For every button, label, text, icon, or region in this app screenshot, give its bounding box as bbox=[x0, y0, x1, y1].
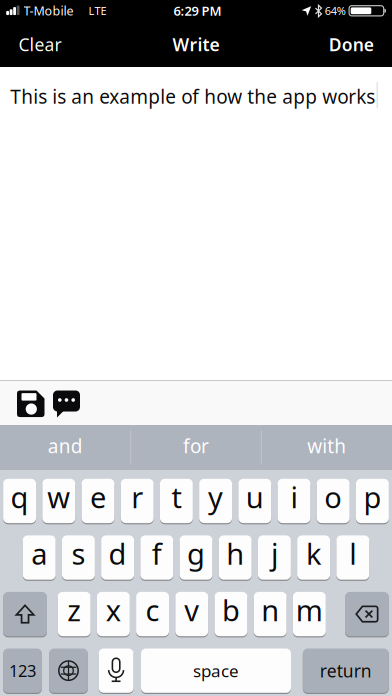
button[interactable]: 123 bbox=[3, 648, 42, 693]
staticText: d bbox=[109, 534, 127, 573]
staticText: h bbox=[226, 534, 244, 573]
button[interactable]: u bbox=[238, 479, 271, 523]
button[interactable]: w bbox=[42, 479, 75, 523]
button[interactable]: x bbox=[97, 592, 130, 636]
staticText: v bbox=[184, 590, 199, 630]
staticText: s bbox=[71, 534, 85, 573]
staticText: f bbox=[152, 534, 162, 573]
staticText: 6:29 PM bbox=[173, 2, 221, 19]
staticText: p bbox=[363, 477, 381, 517]
staticText: b bbox=[222, 590, 240, 630]
button[interactable]: and bbox=[0, 0, 392, 696]
button[interactable] bbox=[53, 390, 80, 417]
button[interactable]: g bbox=[180, 535, 212, 580]
button[interactable] bbox=[3, 592, 47, 636]
button[interactable]: h bbox=[219, 535, 252, 580]
button[interactable] bbox=[17, 391, 44, 417]
button[interactable]: Done bbox=[0, 0, 392, 696]
button[interactable]: m bbox=[293, 592, 326, 636]
staticText: t bbox=[171, 477, 181, 517]
staticText: k bbox=[306, 534, 321, 573]
button[interactable]: space bbox=[141, 648, 291, 693]
button[interactable]: t bbox=[160, 479, 193, 523]
button[interactable]: r bbox=[121, 479, 154, 523]
staticText: r bbox=[131, 477, 143, 517]
staticText: l bbox=[349, 534, 356, 573]
button[interactable]: q bbox=[3, 479, 36, 523]
staticText: g bbox=[187, 534, 205, 573]
staticText: o bbox=[324, 477, 342, 517]
staticText: c bbox=[146, 590, 160, 630]
button[interactable]: for bbox=[0, 0, 392, 696]
button[interactable] bbox=[99, 648, 133, 693]
button[interactable] bbox=[49, 648, 88, 693]
staticText: 123 bbox=[9, 659, 36, 682]
button[interactable]: with bbox=[0, 0, 392, 696]
button[interactable]: d bbox=[101, 535, 134, 580]
staticText: m bbox=[296, 590, 323, 630]
staticText: e bbox=[90, 477, 106, 517]
staticText: y bbox=[208, 477, 223, 517]
staticText: Write bbox=[172, 33, 219, 56]
button[interactable] bbox=[345, 592, 389, 636]
staticText: Done bbox=[329, 33, 374, 56]
button[interactable]: p bbox=[356, 479, 389, 523]
button[interactable]: s bbox=[62, 535, 95, 580]
button[interactable]: z bbox=[58, 592, 91, 636]
staticText: i bbox=[290, 477, 297, 517]
staticText: u bbox=[246, 477, 264, 517]
button[interactable]: Clear bbox=[0, 0, 392, 696]
button[interactable]: b bbox=[214, 592, 247, 636]
staticText: 64% bbox=[325, 3, 346, 18]
staticText: z bbox=[67, 590, 81, 630]
staticText: space bbox=[193, 659, 239, 682]
button[interactable]: j bbox=[258, 535, 291, 580]
staticText: for bbox=[183, 433, 209, 459]
button[interactable]: k bbox=[297, 535, 330, 580]
staticText: Clear bbox=[18, 33, 61, 56]
staticText: x bbox=[106, 590, 121, 630]
button[interactable]: f bbox=[140, 535, 173, 580]
button[interactable]: l bbox=[336, 535, 369, 580]
button[interactable]: e bbox=[81, 479, 114, 523]
staticText: a bbox=[31, 534, 47, 573]
staticText: return bbox=[320, 659, 372, 682]
button[interactable]: i bbox=[277, 479, 310, 523]
staticText: This is an example of how the app works bbox=[10, 84, 375, 109]
button[interactable]: c bbox=[136, 592, 169, 636]
staticText: with bbox=[307, 433, 346, 459]
staticText: n bbox=[261, 590, 279, 630]
staticText: j bbox=[271, 534, 278, 573]
staticText: and bbox=[48, 433, 83, 459]
button[interactable]: v bbox=[175, 592, 208, 636]
button[interactable]: o bbox=[317, 479, 350, 523]
button[interactable]: a bbox=[23, 535, 56, 580]
staticText: w bbox=[47, 477, 70, 517]
button[interactable]: y bbox=[199, 479, 232, 523]
button[interactable]: return bbox=[303, 648, 389, 693]
staticText: LTE bbox=[89, 3, 107, 18]
button[interactable]: n bbox=[254, 592, 287, 636]
staticText: q bbox=[11, 477, 29, 517]
staticText: T-Mobile bbox=[23, 2, 73, 19]
